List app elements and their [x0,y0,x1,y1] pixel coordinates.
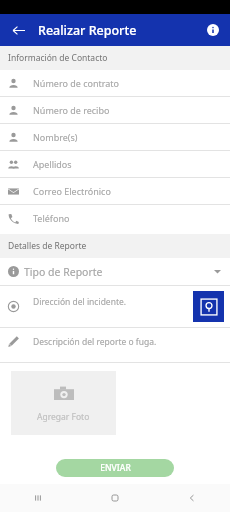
button[interactable]: Teléfono [0,205,230,231]
button[interactable]: Número de contrato [0,70,230,96]
staticText: Agregar Foto [37,411,90,423]
staticText: Correo Electrónico [33,185,111,197]
button[interactable]: Recent apps [0,484,76,512]
button[interactable]: Back [153,484,230,512]
button[interactable]: Correo Electrónico [0,178,230,204]
staticText: Número de recibo [33,104,110,116]
staticText: Apellidos [33,158,72,170]
button[interactable]: Dirección del incidente. [33,296,127,308]
staticText: ENVIAR [100,462,131,474]
staticText: Tipo de Reporte [24,265,103,279]
staticText: Información de Contacto [8,52,108,64]
button[interactable]: Information [202,19,224,41]
staticText: Teléfono [33,212,70,224]
staticText: Detalles de Reporte [8,240,87,252]
staticText: Realizar Reporte [38,22,137,39]
button[interactable]: Tipo de Reporte [0,258,230,285]
button[interactable]: Descripción del reporte o fuga. [0,328,230,362]
button[interactable]: Pick location on map [193,291,224,322]
button[interactable]: Agregar Foto [11,371,116,435]
button[interactable]: Home [76,484,153,512]
staticText: Nombre(s) [33,131,78,143]
button[interactable]: ENVIAR [56,459,174,477]
staticText: Número de contrato [33,77,120,89]
button[interactable]: Back [6,18,30,42]
staticText: Descripción del reporte o fuga. [33,336,157,348]
button[interactable]: Número de recibo [0,97,230,123]
button[interactable]: Apellidos [0,151,230,177]
button[interactable]: Nombre(s) [0,124,230,150]
